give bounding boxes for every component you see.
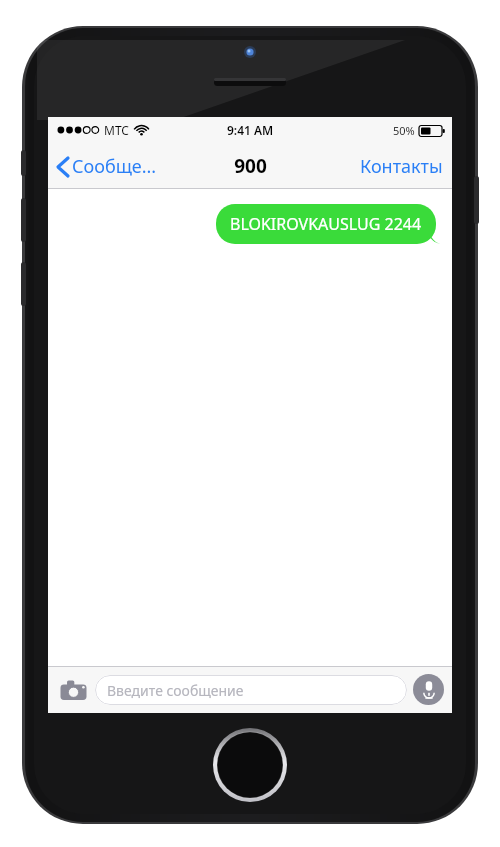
staticText: BLOKIROVKAUSLUG 2244 xyxy=(230,213,422,235)
button[interactable]: Контакты xyxy=(350,148,452,185)
button[interactable]: Введите сообщение xyxy=(95,675,407,705)
button[interactable]: Voice message xyxy=(413,674,444,705)
staticText: 900 xyxy=(234,153,267,179)
staticText: 9:41 AM xyxy=(227,122,274,138)
button[interactable]: Camera xyxy=(56,673,90,707)
button[interactable]: Сообще... xyxy=(48,148,167,185)
staticText: 50% xyxy=(393,123,415,138)
staticText: Введите сообщение xyxy=(107,681,244,700)
staticText: Контакты xyxy=(360,154,443,179)
staticText: Сообще... xyxy=(72,154,157,179)
staticText: MTC xyxy=(104,122,129,138)
button[interactable]: BLOKIROVKAUSLUG 2244 xyxy=(216,204,442,244)
